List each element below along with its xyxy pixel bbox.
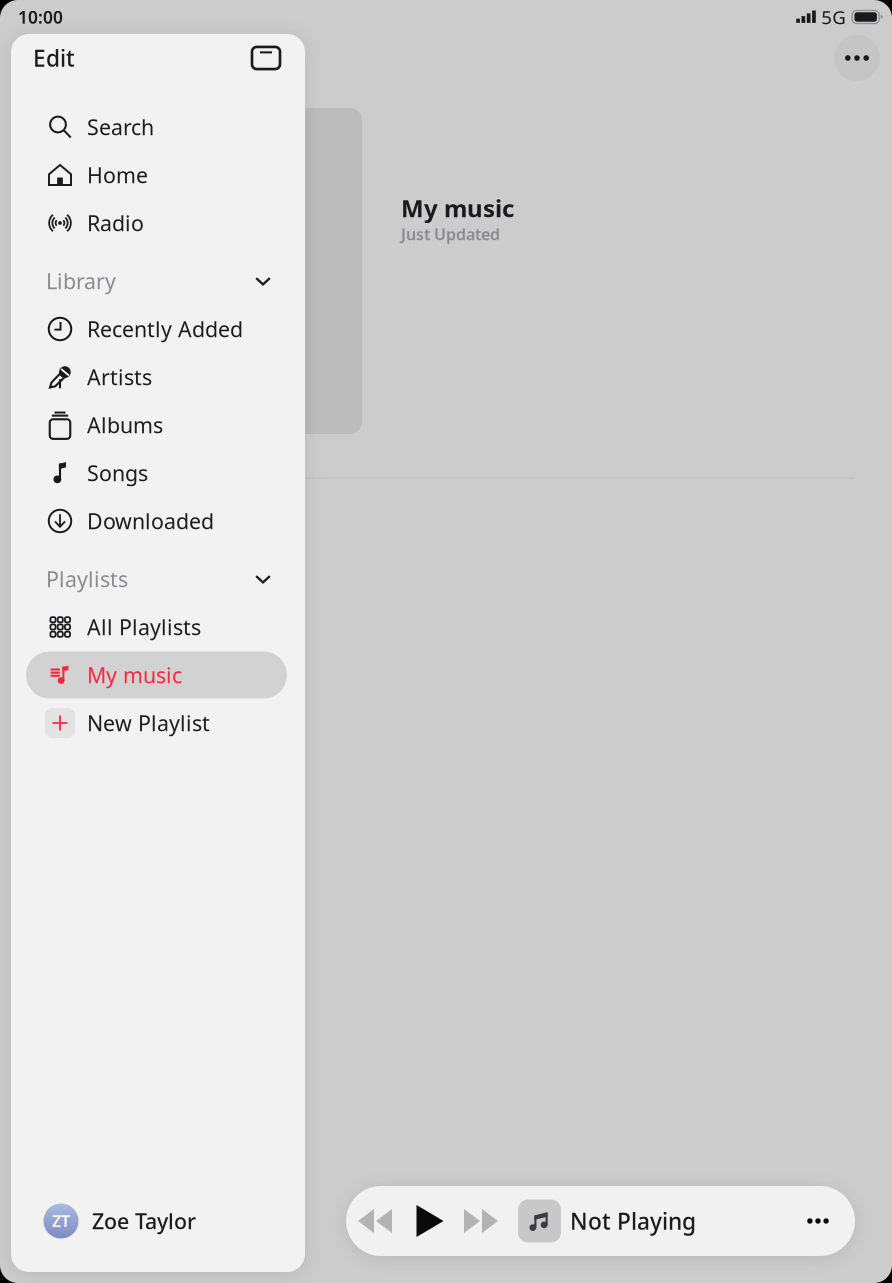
button[interactable]: Previous <box>349 1197 401 1245</box>
button[interactable]: Hide Sidebar <box>243 36 289 80</box>
staticText: Radio <box>87 209 144 237</box>
staticText: My music <box>401 192 514 224</box>
staticText: My music <box>87 661 182 689</box>
button[interactable]: Artists <box>26 353 287 400</box>
staticText: Search <box>87 113 154 141</box>
button[interactable]: Play <box>404 1197 456 1245</box>
button[interactable]: New Playlist <box>26 699 287 746</box>
staticText: Library <box>46 267 116 295</box>
staticText: Not Playing <box>570 1206 696 1236</box>
staticText: Just Updated <box>401 223 500 245</box>
button[interactable]: Songs <box>26 449 287 496</box>
staticText: Albums <box>87 411 163 439</box>
staticText: Playlists <box>46 565 128 593</box>
staticText: 10:00 <box>18 5 63 28</box>
staticText: ZT <box>52 1210 70 1232</box>
button[interactable]: Not Playing <box>518 1186 808 1256</box>
staticText: Downloaded <box>87 507 214 535</box>
button[interactable]: Albums <box>26 401 287 448</box>
button[interactable]: ZT <box>26 1194 287 1248</box>
button[interactable]: Edit <box>33 36 103 80</box>
staticText: All Playlists <box>87 613 201 641</box>
staticText: Zoe Taylor <box>92 1207 196 1235</box>
button[interactable]: Search <box>26 103 287 150</box>
button[interactable]: Collapse Library <box>243 261 283 301</box>
button[interactable]: Collapse Playlists <box>243 559 283 599</box>
button[interactable]: Downloaded <box>26 497 287 544</box>
staticText: New Playlist <box>87 709 210 737</box>
button[interactable]: My music <box>26 651 287 698</box>
button[interactable]: Next <box>455 1197 507 1245</box>
button[interactable]: Radio <box>26 199 287 246</box>
staticText: Home <box>87 161 148 189</box>
button[interactable]: Home <box>26 151 287 198</box>
button[interactable]: Recently Added <box>26 305 287 352</box>
staticText: Artists <box>87 363 152 391</box>
staticText: Songs <box>87 459 148 487</box>
button[interactable]: All Playlists <box>26 603 287 650</box>
button[interactable]: More <box>834 35 880 81</box>
staticText: Edit <box>33 43 75 73</box>
button[interactable]: More options <box>790 1195 846 1247</box>
staticText: 5G <box>821 5 846 29</box>
staticText: Recently Added <box>87 315 243 343</box>
